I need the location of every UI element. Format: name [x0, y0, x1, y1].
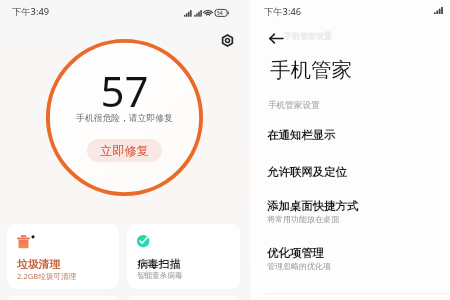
staticText: 将常用功能放在桌面: [267, 214, 339, 224]
staticText: 下午3:49: [12, 5, 50, 18]
button[interactable]: 允许联网及定位: [250, 159, 450, 193]
staticText: 智能查杀病毒: [137, 271, 183, 281]
staticText: 立即修复: [100, 143, 149, 158]
staticText: 在通知栏显示: [267, 128, 336, 142]
staticText: 添加桌面快捷方式: [267, 199, 359, 213]
staticText: 57: [100, 62, 149, 119]
staticText: 54: [217, 10, 223, 17]
button[interactable]: 病毒扫描: [127, 224, 240, 289]
staticText: 病毒扫描: [137, 258, 181, 272]
staticText: 手机管家设置: [284, 31, 332, 41]
button[interactable]: 立即修复: [87, 139, 162, 162]
staticText: 优化项管理: [267, 246, 324, 260]
button[interactable]: Settings: [219, 32, 236, 49]
button[interactable]: 在通知栏显示: [250, 122, 450, 156]
button[interactable]: 添加桌面快捷方式: [250, 193, 450, 237]
staticText: 手机管家: [270, 57, 352, 83]
staticText: 管理忽略的优化项: [267, 261, 331, 271]
staticText: 手机很危险，请立即修复: [76, 113, 173, 124]
button[interactable]: Back: [265, 28, 286, 49]
button[interactable]: 优化项管理: [250, 240, 450, 284]
staticText: 2.2GB垃圾可清理: [17, 271, 77, 281]
staticText: 允许联网及定位: [267, 165, 347, 179]
staticText: 下午3:46: [264, 5, 302, 18]
staticText: 手机管家设置: [268, 100, 320, 111]
button[interactable]: 垃圾清理: [7, 224, 119, 289]
staticText: 垃圾清理: [17, 258, 61, 272]
